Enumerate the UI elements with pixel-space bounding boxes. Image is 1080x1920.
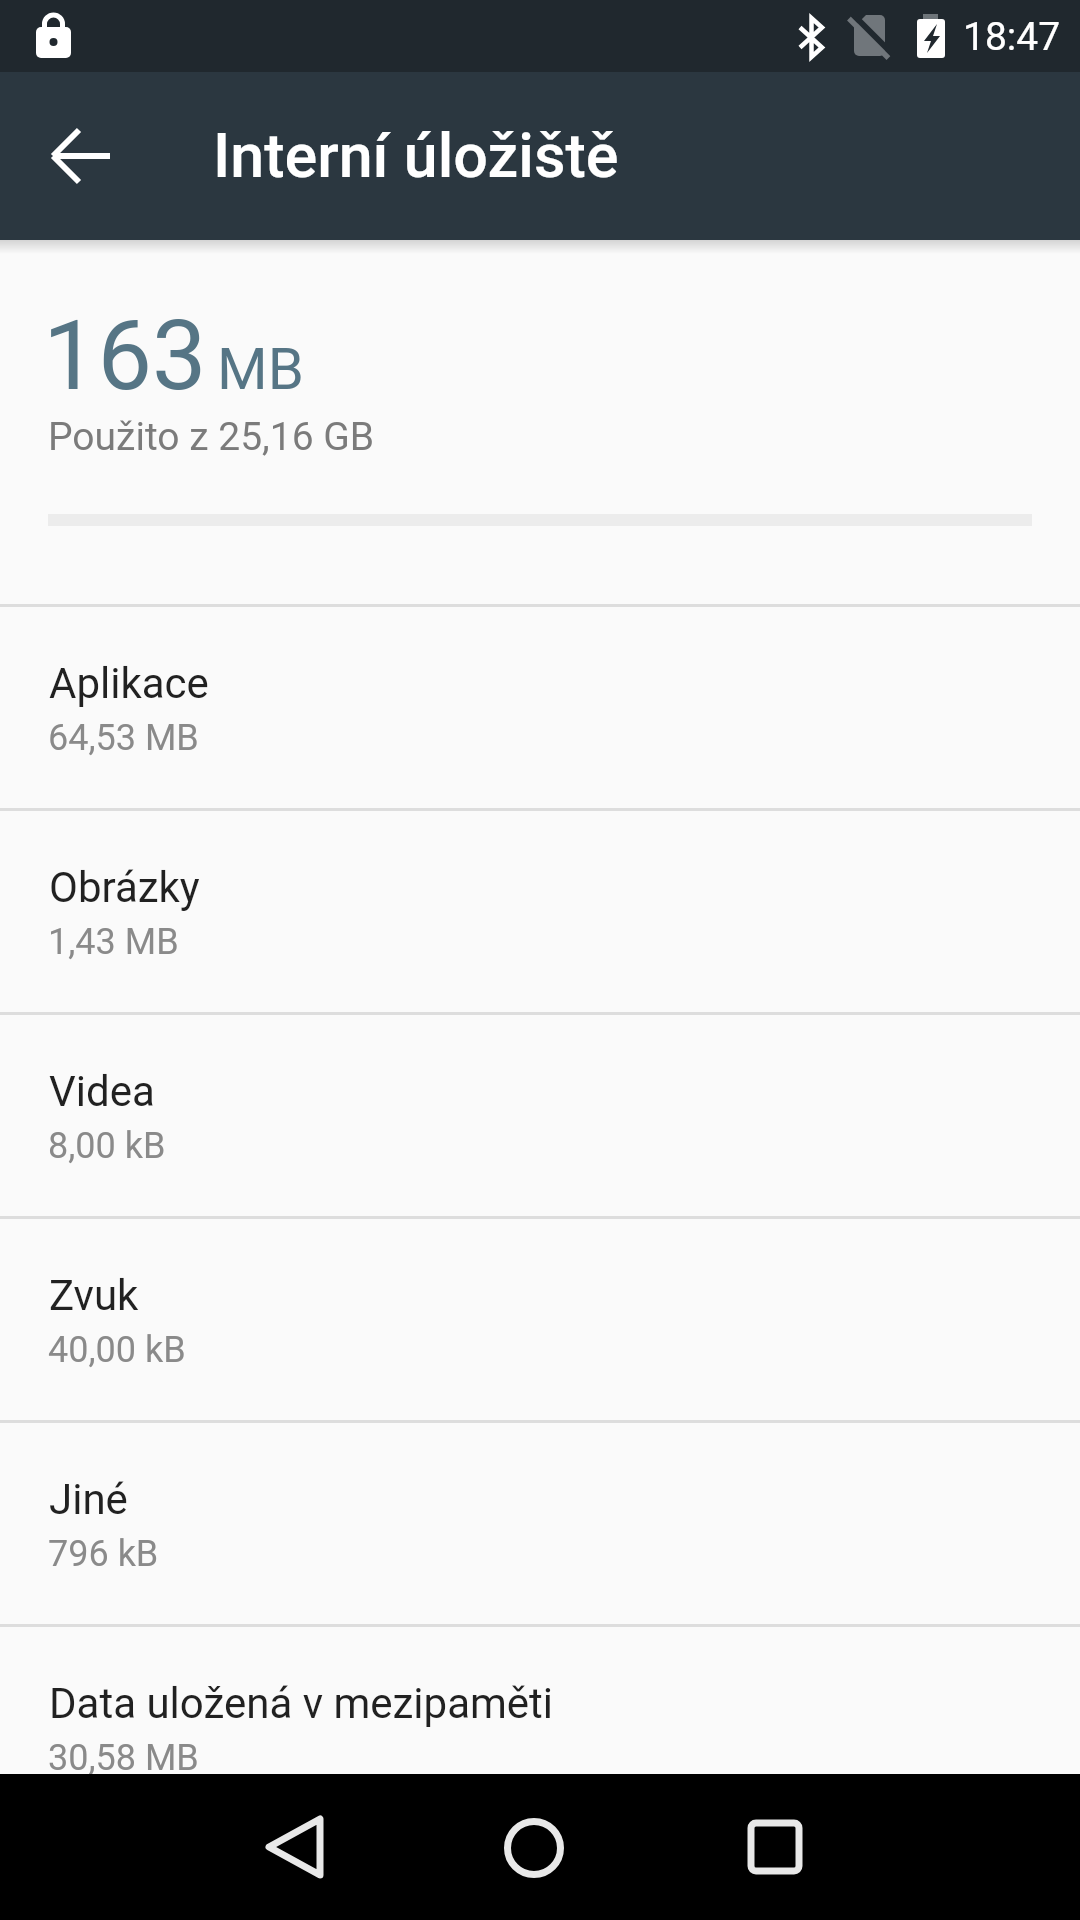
button[interactable] xyxy=(486,1800,582,1896)
button[interactable] xyxy=(727,1799,823,1895)
staticText: Zvuk xyxy=(49,1271,139,1320)
staticText: 40,00 kB xyxy=(48,1329,186,1371)
staticText: 796 kB xyxy=(48,1533,159,1575)
staticText: 8,00 kB xyxy=(48,1125,166,1167)
staticText: Obrázky xyxy=(49,863,200,912)
staticText: Interní úložiště xyxy=(213,120,619,191)
staticText: 18:47 xyxy=(963,14,1061,60)
staticText: 163 xyxy=(43,299,207,413)
staticText: 1,43 MB xyxy=(48,921,179,963)
staticText: Jiné xyxy=(49,1475,128,1524)
button[interactable]: Aplikace xyxy=(0,607,1080,808)
button[interactable]: Data uložená v mezipaměti xyxy=(0,1627,1080,1828)
button[interactable]: Videa xyxy=(0,1015,1080,1216)
staticText: 30,58 MB xyxy=(48,1737,199,1779)
staticText: 64,53 MB xyxy=(48,717,199,759)
button[interactable]: Obrázky xyxy=(0,811,1080,1012)
button[interactable]: Zvuk xyxy=(0,1219,1080,1420)
button[interactable] xyxy=(247,1799,343,1895)
button[interactable]: Jiné xyxy=(0,1423,1080,1624)
staticText: MB xyxy=(217,335,304,403)
button[interactable] xyxy=(48,122,116,190)
staticText: Aplikace xyxy=(49,659,209,708)
staticText: Videa xyxy=(49,1067,155,1116)
staticText: Použito z 25,16 GB xyxy=(48,414,375,460)
staticText: Data uložená v mezipaměti xyxy=(49,1679,554,1728)
